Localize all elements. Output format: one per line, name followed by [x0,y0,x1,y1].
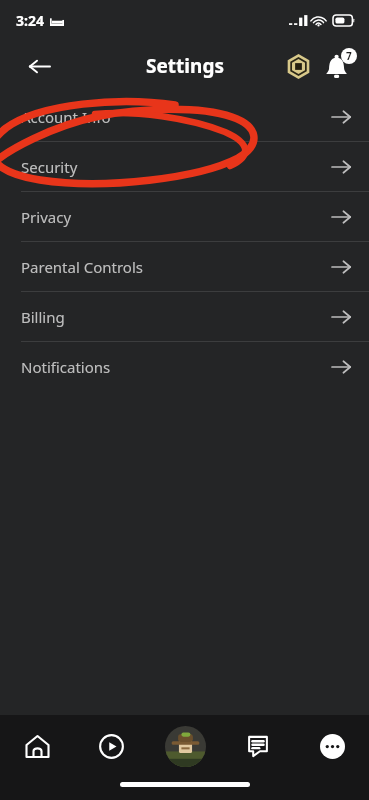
button[interactable]: Account Info [0,92,369,141]
staticText: Notifications [21,357,111,377]
button[interactable]: Notifications [0,342,369,391]
button[interactable]: More [305,719,359,773]
staticText: Account Info [21,107,111,127]
staticText: 7 [346,49,352,63]
staticText: Billing [21,307,65,327]
button[interactable]: Privacy [0,192,369,241]
button[interactable]: Back [22,49,56,83]
button[interactable]: Parental Controls [0,242,369,291]
button[interactable]: Notifications [321,49,355,83]
staticText: Security [21,157,78,177]
button[interactable]: Security [0,142,369,191]
button[interactable]: Avatar [158,719,212,773]
button[interactable]: Robux [283,51,313,81]
staticText: Parental Controls [21,257,143,277]
button[interactable]: Play [84,719,138,773]
button[interactable]: Home [10,719,64,773]
staticText: Settings [146,53,224,79]
staticText: Privacy [21,207,72,227]
button[interactable]: Billing [0,292,369,341]
staticText: 3:24 [16,11,44,30]
button[interactable]: Chat [231,719,285,773]
